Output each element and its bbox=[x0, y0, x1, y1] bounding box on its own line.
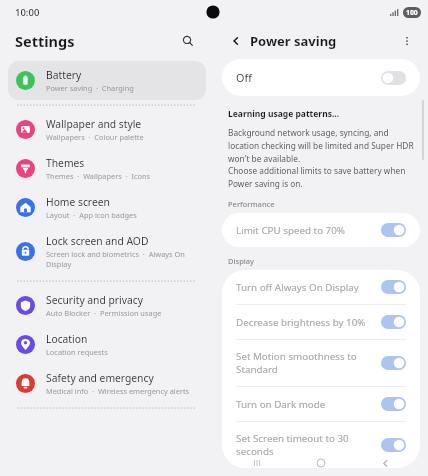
button[interactable]: Wallpaper and style bbox=[8, 110, 206, 149]
staticText: Wallpaper and style bbox=[46, 117, 142, 131]
staticText: Battery bbox=[46, 68, 82, 82]
staticText: Screen lock and biometrics · Always On D… bbox=[46, 249, 198, 269]
button[interactable]: Safety and emergency bbox=[8, 364, 206, 403]
staticText: Security and privacy bbox=[46, 293, 143, 307]
button[interactable]: Recents bbox=[236, 450, 278, 476]
button[interactable]: Turn on Dark mode bbox=[222, 387, 420, 421]
button[interactable]: Off bbox=[222, 59, 420, 96]
button[interactable]: Themes bbox=[8, 149, 206, 188]
staticText: Medical info · Wireless emergency alerts bbox=[46, 386, 190, 396]
staticText: Turn off Always On Display bbox=[236, 281, 373, 294]
staticText: Themes · Wallpapers · Icons bbox=[46, 171, 151, 181]
button[interactable]: Back bbox=[364, 450, 406, 476]
staticText: Set Screen timeout to 30 seconds bbox=[236, 432, 373, 458]
staticText: 100 bbox=[406, 8, 418, 17]
button[interactable]: Lock screen and AOD bbox=[8, 227, 206, 276]
staticText: Off bbox=[236, 70, 381, 85]
staticText: Decrease brightness by 10% bbox=[236, 316, 373, 329]
staticText: Display bbox=[228, 256, 255, 266]
button[interactable]: Set Screen timeout to 30 seconds bbox=[222, 422, 420, 468]
button[interactable]: Battery bbox=[8, 61, 206, 100]
staticText: Location requests bbox=[46, 347, 108, 357]
button[interactable]: Location bbox=[8, 325, 206, 364]
staticText: 10:00 bbox=[15, 6, 40, 19]
button[interactable]: Back bbox=[225, 30, 246, 51]
staticText: Themes bbox=[46, 156, 85, 170]
button[interactable]: Set Motion smoothness to Standard bbox=[222, 340, 420, 386]
staticText: Power saving · Charging bbox=[46, 83, 134, 93]
button[interactable]: Search bbox=[175, 28, 201, 54]
staticText: Choose additional limits to save battery… bbox=[228, 165, 414, 190]
staticText: Wallpapers · Colour palette bbox=[46, 132, 144, 142]
button[interactable]: Home screen bbox=[8, 188, 206, 227]
staticText: Background network usage, syncing, and l… bbox=[228, 127, 414, 165]
staticText: Learning usage patterns... bbox=[228, 108, 340, 120]
staticText: Safety and emergency bbox=[46, 371, 154, 385]
staticText: Settings bbox=[15, 31, 75, 51]
staticText: Auto Blocker · Permission usage bbox=[46, 308, 162, 318]
staticText: Performance bbox=[228, 199, 275, 209]
button[interactable]: Home bbox=[300, 450, 342, 476]
button[interactable]: Turn off Always On Display bbox=[222, 270, 420, 304]
staticText: Power saving bbox=[250, 32, 337, 50]
button[interactable]: More options bbox=[395, 29, 418, 52]
staticText: Limit CPU speed to 70% bbox=[236, 224, 373, 237]
button[interactable]: Decrease brightness by 10% bbox=[222, 305, 420, 339]
staticText: Location bbox=[46, 332, 88, 346]
button[interactable]: Limit CPU speed to 70% bbox=[222, 213, 420, 247]
staticText: Set Motion smoothness to Standard bbox=[236, 350, 373, 376]
staticText: Turn on Dark mode bbox=[236, 398, 373, 411]
staticText: Home screen bbox=[46, 195, 110, 209]
staticText: Lock screen and AOD bbox=[46, 234, 149, 248]
button[interactable]: Security and privacy bbox=[8, 286, 206, 325]
staticText: Layout · App icon badges bbox=[46, 210, 137, 220]
